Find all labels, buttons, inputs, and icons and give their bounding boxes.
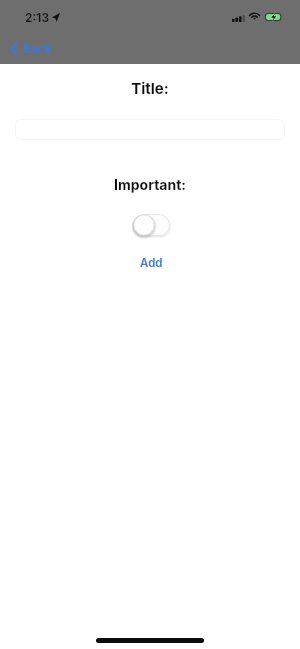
- button[interactable]: Title text field: [15, 119, 285, 140]
- staticText: Title:: [0, 79, 300, 97]
- button[interactable]: Add: [135, 252, 168, 274]
- staticText: Add: [140, 256, 163, 270]
- button[interactable]: Important toggle: [133, 214, 170, 236]
- button[interactable]: Back: [6, 39, 56, 58]
- staticText: 2:13: [25, 10, 50, 25]
- staticText: Back: [23, 41, 52, 56]
- staticText: Important:: [0, 176, 300, 193]
